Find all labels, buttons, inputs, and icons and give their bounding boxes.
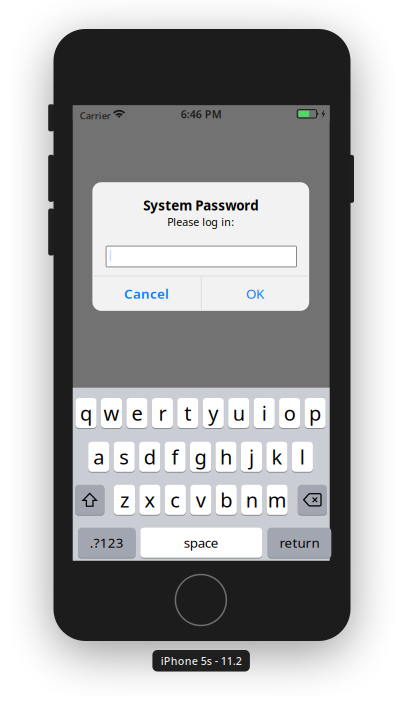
staticText: n — [246, 486, 258, 513]
staticText: i — [262, 400, 267, 426]
staticText: k — [271, 443, 282, 470]
button[interactable]: w — [101, 397, 122, 428]
staticText: l — [300, 443, 305, 470]
button[interactable]: y — [203, 397, 224, 428]
button[interactable]: i — [254, 397, 275, 428]
button[interactable]: t — [177, 397, 198, 428]
staticText: x — [144, 486, 155, 513]
button[interactable]: o — [279, 397, 300, 428]
staticText: space — [184, 534, 219, 551]
button[interactable]: z — [114, 484, 135, 515]
staticText: OK — [246, 285, 264, 302]
staticText: System Password — [143, 196, 258, 214]
staticText: z — [120, 486, 129, 513]
staticText: v — [196, 486, 206, 513]
button[interactable]: return — [268, 527, 331, 558]
staticText: q — [80, 400, 92, 426]
staticText: j — [249, 443, 254, 470]
staticText: r — [158, 400, 166, 426]
button[interactable]: u — [228, 397, 249, 428]
button[interactable]: h — [215, 441, 237, 472]
button[interactable]: q — [75, 397, 97, 428]
button[interactable]: g — [190, 441, 211, 472]
staticText: d — [144, 443, 156, 470]
button[interactable]: m — [267, 484, 288, 515]
button[interactable]: d — [139, 441, 160, 472]
button[interactable]: e — [126, 397, 147, 428]
button[interactable]: v — [190, 484, 211, 515]
button[interactable]: space — [140, 527, 262, 558]
button[interactable]: .?123 — [78, 527, 136, 558]
button[interactable]: k — [266, 441, 287, 472]
staticText: e — [131, 400, 142, 426]
staticText: .?123 — [90, 534, 124, 551]
staticText: p — [309, 400, 321, 426]
button[interactable]: c — [165, 484, 186, 515]
staticText: return — [279, 534, 319, 551]
staticText: Please log in: — [167, 215, 234, 229]
staticText: b — [220, 486, 232, 513]
button[interactable]: x — [139, 484, 160, 515]
button[interactable]: r — [152, 397, 173, 428]
button[interactable]: p — [305, 397, 326, 428]
staticText: iPhone 5s - 11.2 — [161, 654, 242, 668]
button[interactable]: OK — [201, 276, 309, 311]
staticText: h — [220, 443, 232, 470]
button[interactable]: a — [88, 441, 109, 472]
staticText: o — [284, 400, 296, 426]
button[interactable]: b — [216, 484, 237, 515]
staticText: Cancel — [124, 285, 169, 302]
staticText: 6:46 PM — [181, 107, 222, 121]
staticText: Carrier — [80, 109, 111, 122]
staticText: m — [268, 486, 287, 513]
button[interactable]: Shift — [75, 484, 104, 515]
staticText: f — [172, 443, 179, 470]
staticText: c — [170, 486, 180, 513]
button[interactable]: Delete — [298, 484, 327, 515]
button[interactable]: l — [292, 441, 313, 472]
staticText: w — [103, 400, 119, 426]
staticText: u — [233, 400, 245, 426]
button[interactable]: n — [241, 484, 262, 515]
button[interactable]: Cancel — [92, 276, 201, 311]
staticText: g — [195, 443, 207, 470]
staticText: a — [93, 443, 104, 470]
button[interactable]: f — [165, 441, 186, 472]
button[interactable]: s — [114, 441, 135, 472]
button[interactable]: j — [241, 441, 262, 472]
staticText: y — [208, 400, 218, 426]
staticText: t — [184, 400, 191, 426]
staticText: s — [119, 443, 129, 470]
